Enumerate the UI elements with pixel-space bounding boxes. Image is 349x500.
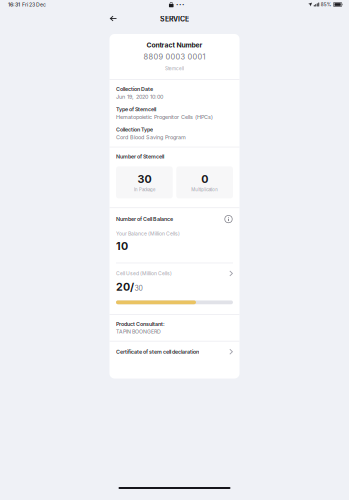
staticText: Product Consultant: <box>116 321 165 327</box>
staticText: Contract Number <box>146 41 202 49</box>
staticText: 30 <box>137 173 151 185</box>
staticText: Cell Used (Million Cells) <box>116 270 172 276</box>
staticText: 30 <box>134 284 142 293</box>
staticText: In Package <box>134 187 155 192</box>
staticText: Collection Type <box>116 126 153 133</box>
staticText: TAPIN BOONGERD <box>116 328 161 335</box>
button[interactable]: Certificate of stem cell declaration <box>109 341 239 378</box>
staticText: 16:31 <box>8 1 20 8</box>
staticText: 0 <box>201 173 208 185</box>
staticText: SERVICE <box>160 15 189 23</box>
staticText: Stemcell <box>165 66 184 71</box>
staticText: 20/ <box>116 280 134 293</box>
staticText: Cord Blood Saving Program <box>116 134 186 141</box>
staticText: 10 <box>116 240 128 253</box>
staticText: Type of Stemcell <box>116 106 156 113</box>
button[interactable]: Cell Used (Million Cells) <box>116 263 233 293</box>
button[interactable]: About cell balance <box>224 215 233 224</box>
staticText: Hematopoietic Progenitor Cells (HPCs) <box>116 114 213 120</box>
staticText: 85% <box>321 2 332 7</box>
staticText: Multiplication <box>191 187 218 192</box>
staticText: Fri 23 Dec <box>20 1 46 8</box>
button[interactable]: Back <box>104 11 122 26</box>
staticText: Number of Stemcell <box>116 153 164 160</box>
staticText: 8809 0003 0001 <box>143 52 205 61</box>
staticText: Jun 19, 2020 10:00 <box>116 93 163 100</box>
staticText: Collection Date <box>116 86 153 92</box>
staticText: Your Balance (Million Cells) <box>116 231 180 237</box>
staticText: Number of Cell Balance <box>116 216 173 222</box>
staticText: • • • <box>176 2 184 7</box>
staticText: Certificate of stem cell declaration <box>116 348 199 355</box>
